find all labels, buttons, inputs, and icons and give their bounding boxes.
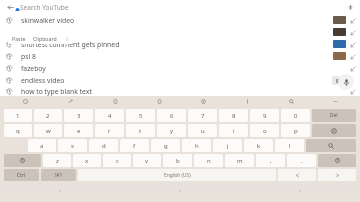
button[interactable]: i xyxy=(219,124,248,137)
button[interactable]: 9 xyxy=(250,109,279,122)
button[interactable]: Move right xyxy=(318,169,356,181)
staticText: y xyxy=(170,127,174,135)
button[interactable]: q xyxy=(4,124,32,137)
button[interactable]: Voice search xyxy=(338,74,354,90)
button[interactable]: j xyxy=(213,139,242,152)
button[interactable]: Insert suggestion xyxy=(349,53,356,60)
button[interactable]: 8 xyxy=(219,109,248,122)
button[interactable]: x xyxy=(73,154,101,167)
button[interactable]: Sticker xyxy=(181,96,225,107)
staticText: skinwalker video xyxy=(21,16,333,25)
button[interactable]: 5 xyxy=(126,109,155,122)
button[interactable]: Clipboard xyxy=(33,35,57,42)
staticText: 6 xyxy=(170,112,174,120)
button[interactable]: !#1 xyxy=(41,169,76,181)
button[interactable]: 2 xyxy=(34,109,62,122)
button[interactable]: Search xyxy=(306,139,356,152)
button[interactable]: Del xyxy=(312,109,356,122)
staticText: l xyxy=(289,142,291,150)
button[interactable]: Shift xyxy=(4,154,41,167)
staticText: p xyxy=(294,127,298,135)
button[interactable]: Backspace xyxy=(312,124,356,137)
button[interactable]: Insert suggestion xyxy=(349,88,356,95)
button[interactable]: Insert suggestion xyxy=(349,65,356,72)
button[interactable]: v xyxy=(133,154,161,167)
button[interactable]: 6 xyxy=(157,109,186,122)
button[interactable]: Clipboard xyxy=(93,96,137,107)
staticText: 3 xyxy=(77,112,81,120)
button[interactable]: 7 xyxy=(188,109,217,122)
button[interactable]: More options xyxy=(64,36,69,41)
staticText: o xyxy=(263,127,267,135)
button[interactable]: o xyxy=(250,124,279,137)
button[interactable]: d xyxy=(89,139,118,152)
staticText: a xyxy=(40,142,44,150)
button[interactable]: Ctrl xyxy=(4,169,39,181)
button[interactable]: e xyxy=(64,124,93,137)
button[interactable]: z xyxy=(43,154,71,167)
button[interactable]: Back xyxy=(4,1,16,13)
button[interactable]: 0 xyxy=(281,109,310,122)
staticText: English (US) xyxy=(164,172,191,179)
staticText: 2 xyxy=(46,112,50,120)
button[interactable]: l xyxy=(275,139,304,152)
button[interactable]: psl 8 xyxy=(0,50,360,62)
button[interactable]: . xyxy=(287,154,316,167)
button[interactable]: Insert suggestion xyxy=(349,29,356,36)
button[interactable]: , xyxy=(256,154,285,167)
button[interactable]: 4 xyxy=(95,109,124,122)
staticText: Search YouTube xyxy=(20,3,69,12)
button[interactable]: endless video xyxy=(0,74,360,86)
button[interactable]: fazeboy xyxy=(0,62,360,74)
staticText: 0 xyxy=(294,112,298,120)
button[interactable]: Emoji xyxy=(3,96,48,107)
button[interactable]: More xyxy=(313,96,357,107)
staticText: w xyxy=(46,127,51,135)
button[interactable]: h xyxy=(182,139,211,152)
staticText: u xyxy=(201,127,205,135)
button[interactable]: g xyxy=(151,139,180,152)
staticText: z xyxy=(56,157,59,165)
staticText: psl 8 xyxy=(21,52,333,61)
button[interactable]: shortest comment gets pinned xyxy=(0,38,360,50)
button[interactable]: p xyxy=(281,124,310,137)
button[interactable]: Search xyxy=(269,96,313,107)
button[interactable]: Insert suggestion xyxy=(0,26,360,38)
button[interactable]: Text edit xyxy=(225,96,269,107)
button[interactable]: a xyxy=(28,139,56,152)
button[interactable]: skinwalker video xyxy=(0,14,360,26)
button[interactable]: b xyxy=(163,154,192,167)
button[interactable]: 3 xyxy=(64,109,93,122)
button[interactable]: s xyxy=(58,139,87,152)
staticText: , xyxy=(270,157,272,165)
button[interactable]: Insert suggestion xyxy=(349,41,356,48)
button[interactable]: Translate xyxy=(137,96,181,107)
staticText: s xyxy=(71,142,74,150)
staticText: j xyxy=(227,142,229,150)
button[interactable]: Insert suggestion xyxy=(349,17,356,24)
button[interactable]: English (US) xyxy=(78,169,276,181)
button[interactable]: Voice search xyxy=(344,1,356,13)
button[interactable]: f xyxy=(120,139,149,152)
staticText: 7 xyxy=(201,112,205,120)
staticText: t xyxy=(139,127,142,135)
button[interactable]: c xyxy=(103,154,131,167)
button[interactable]: m xyxy=(225,154,254,167)
button[interactable]: k xyxy=(244,139,273,152)
button[interactable]: Shift xyxy=(318,154,356,167)
button[interactable]: Move left xyxy=(278,169,316,181)
button[interactable]: y xyxy=(157,124,186,137)
button[interactable]: 1 xyxy=(4,109,32,122)
staticText: how to type blank text xyxy=(21,87,333,96)
button[interactable]: t xyxy=(126,124,155,137)
button[interactable]: n xyxy=(194,154,223,167)
button[interactable]: w xyxy=(34,124,62,137)
button[interactable]: Paste xyxy=(12,35,26,42)
button[interactable]: how to type blank text xyxy=(0,86,360,96)
button[interactable]: r xyxy=(95,124,124,137)
button[interactable]: u xyxy=(188,124,217,137)
button[interactable]: Settings xyxy=(48,96,93,107)
